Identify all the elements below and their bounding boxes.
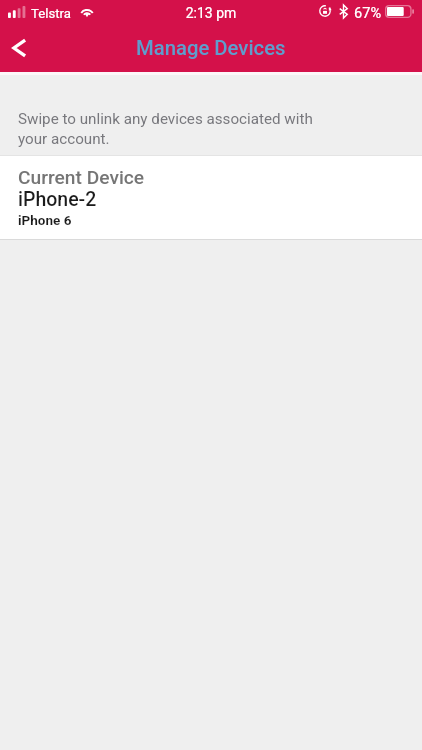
staticText: Swipe to unlink any devices associated w… [18, 110, 313, 147]
button[interactable]: Back [0, 26, 37, 70]
staticText: iPhone 6 [18, 212, 72, 228]
staticText: Telstra [31, 6, 71, 21]
staticText: Current Device [18, 166, 145, 189]
button[interactable]: Current Device [0, 156, 422, 239]
staticText: iPhone-2 [18, 188, 97, 211]
staticText: 67% [354, 4, 382, 21]
staticText: 2:13 pm [0, 5, 422, 21]
staticText: Manage Devices [136, 36, 286, 60]
